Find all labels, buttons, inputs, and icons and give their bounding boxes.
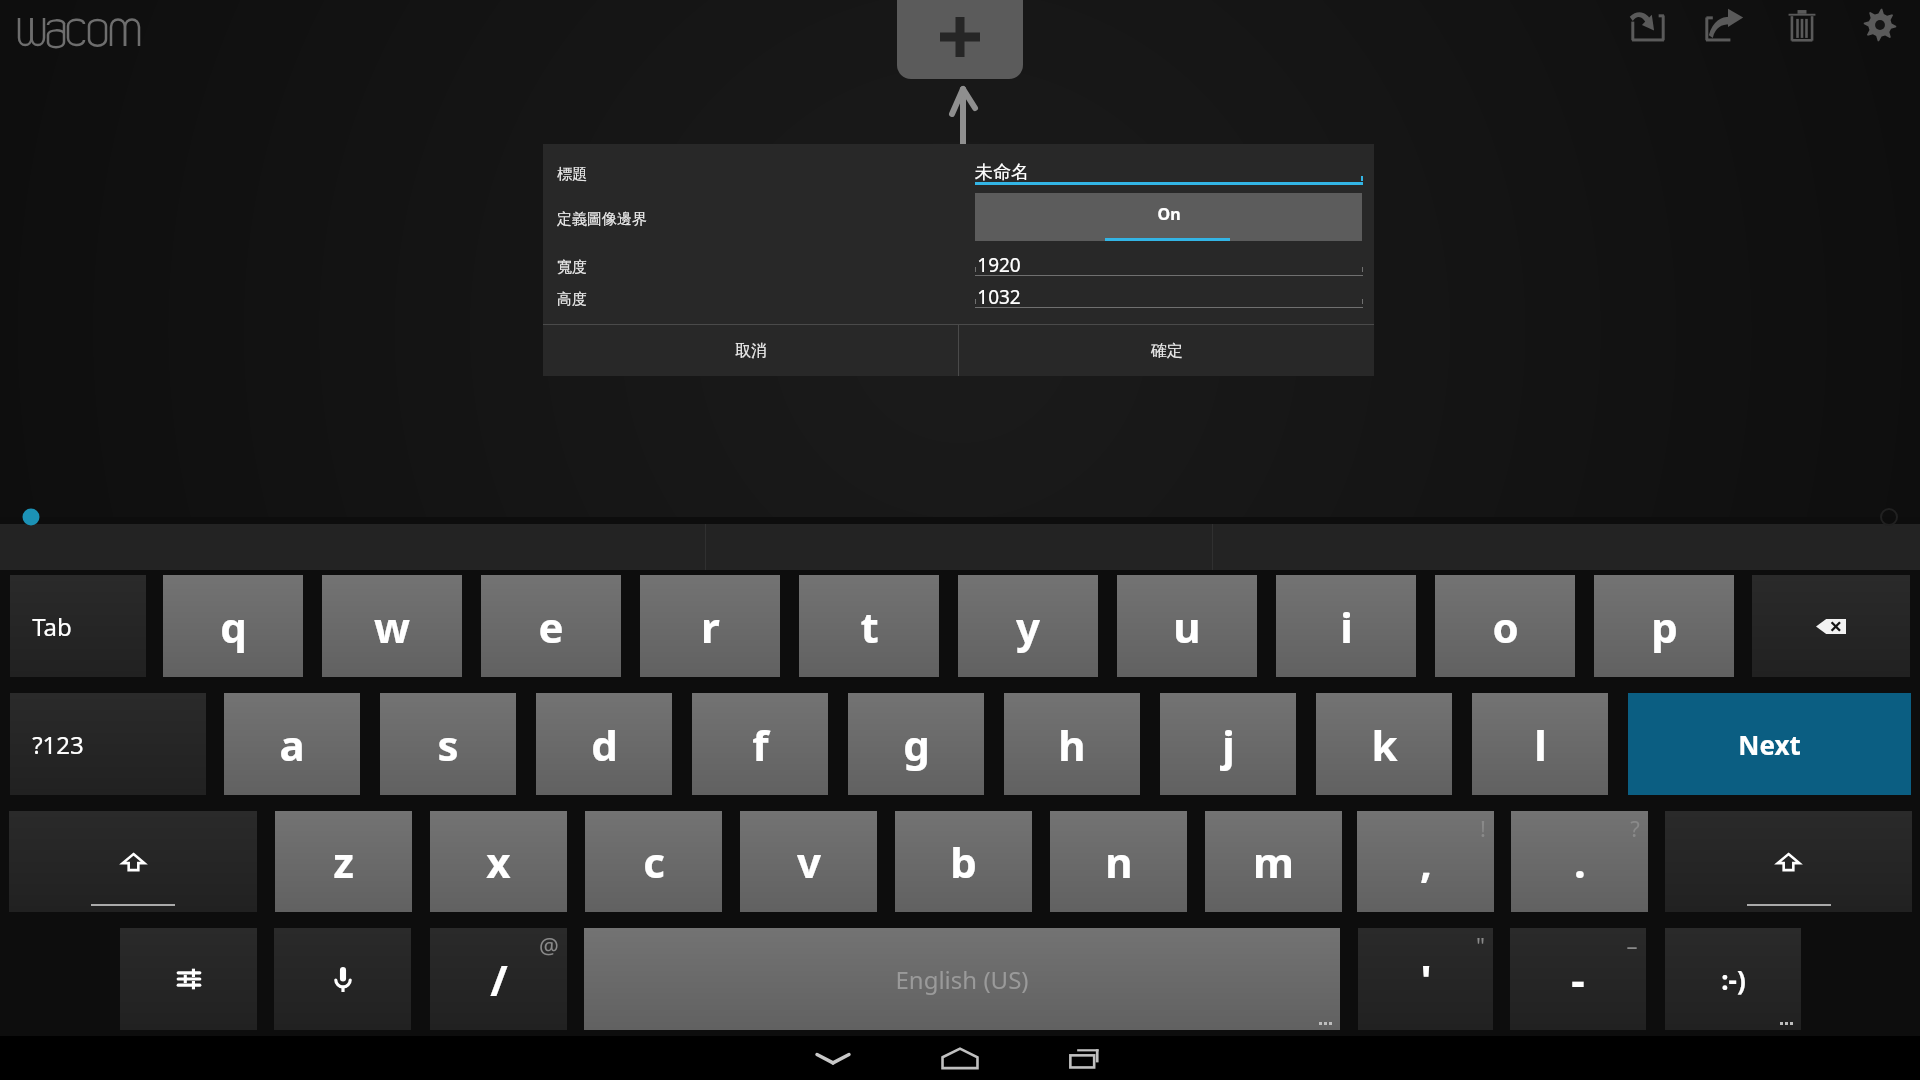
button[interactable]: f: [692, 693, 828, 795]
button[interactable]: /: [430, 928, 567, 1030]
button[interactable]: ': [1358, 928, 1493, 1030]
staticText: j: [1222, 716, 1235, 773]
button[interactable]: bksp: [1752, 575, 1910, 677]
button[interactable]: Hide keyboard: [793, 1036, 873, 1080]
button[interactable]: h: [1004, 693, 1140, 795]
button[interactable]: :-): [1665, 928, 1801, 1030]
button[interactable]: z: [275, 811, 412, 912]
button[interactable]: x: [430, 811, 567, 912]
button[interactable]: ?123: [10, 693, 206, 795]
button[interactable]: o: [1435, 575, 1575, 677]
button[interactable]: Title field: [975, 158, 1363, 185]
button[interactable]: s: [380, 693, 516, 795]
staticText: ?123: [32, 728, 84, 761]
button[interactable]: u: [1117, 575, 1257, 677]
staticText: :-): [1721, 962, 1746, 997]
staticText: ,: [1420, 833, 1432, 890]
staticText: h: [1058, 716, 1086, 773]
staticText: y: [1016, 598, 1040, 655]
button[interactable]: Settings: [1841, 0, 1919, 50]
button[interactable]: p: [1594, 575, 1734, 677]
button[interactable]: d: [536, 693, 672, 795]
staticText: 標題: [557, 165, 587, 184]
button[interactable]: Width field: [975, 252, 1363, 276]
button[interactable]: Import: [1609, 0, 1687, 50]
button[interactable]: c: [585, 811, 722, 912]
staticText: b: [950, 833, 977, 890]
button[interactable]: cfg: [120, 928, 257, 1030]
button[interactable]: k: [1316, 693, 1452, 795]
button[interactable]: w: [322, 575, 462, 677]
button[interactable]: ,: [1357, 811, 1494, 912]
staticText: v: [797, 833, 821, 890]
button[interactable]: r: [640, 575, 780, 677]
button[interactable]: j: [1160, 693, 1296, 795]
button[interactable]: e: [481, 575, 621, 677]
button[interactable]: Tab: [10, 575, 146, 677]
staticText: 1032: [977, 284, 1021, 308]
staticText: .: [1574, 833, 1586, 890]
staticText: n: [1105, 833, 1133, 890]
button[interactable]: g: [848, 693, 984, 795]
staticText: t: [860, 598, 879, 655]
staticText: 1920: [977, 252, 1021, 276]
staticText: o: [1492, 598, 1519, 655]
staticText: r: [701, 598, 720, 655]
staticText: 寬度: [557, 258, 587, 277]
staticText: 取消: [735, 341, 767, 361]
staticText: a: [279, 716, 305, 773]
button[interactable]: y: [958, 575, 1098, 677]
button[interactable]: m: [1205, 811, 1342, 912]
button[interactable]: English (US): [584, 928, 1340, 1030]
staticText: 高度: [557, 290, 587, 309]
button[interactable]: t: [799, 575, 939, 677]
button[interactable]: b: [895, 811, 1032, 912]
button[interactable]: mic: [274, 928, 411, 1030]
button[interactable]: Add new sketch: [897, 0, 1023, 79]
staticText: ?: [1630, 813, 1640, 843]
button[interactable]: Next: [1628, 693, 1911, 795]
staticText: !: [1480, 813, 1486, 843]
button[interactable]: 取消: [543, 325, 958, 376]
button[interactable]: n: [1050, 811, 1187, 912]
button[interactable]: q: [163, 575, 303, 677]
button[interactable]: 確定: [959, 325, 1374, 376]
staticText: e: [538, 598, 564, 655]
button[interactable]: Delete: [1763, 0, 1841, 50]
button[interactable]: a: [224, 693, 360, 795]
button[interactable]: v: [740, 811, 877, 912]
button[interactable]: On: [975, 193, 1362, 241]
staticText: l: [1534, 716, 1547, 773]
staticText: Tab: [32, 610, 72, 643]
button[interactable]: shift: [9, 811, 257, 912]
staticText: –: [1626, 930, 1638, 960]
button[interactable]: shift: [1665, 811, 1912, 912]
staticText: s: [437, 716, 459, 773]
staticText: i: [1340, 598, 1353, 655]
staticText: -: [1571, 951, 1585, 1008]
staticText: /: [490, 951, 508, 1008]
staticText: Next: [1738, 727, 1801, 762]
staticText: @: [539, 930, 559, 960]
button[interactable]: .: [1511, 811, 1648, 912]
button[interactable]: Recent apps: [1046, 1039, 1126, 1077]
staticText: x: [486, 833, 511, 890]
staticText: g: [903, 716, 930, 773]
button[interactable]: Share: [1685, 0, 1763, 50]
staticText: q: [220, 598, 247, 655]
staticText: f: [752, 716, 769, 773]
button[interactable]: Home: [920, 1039, 1000, 1077]
staticText: ": [1476, 930, 1485, 960]
staticText: m: [1253, 833, 1294, 890]
button[interactable]: i: [1276, 575, 1416, 677]
staticText: d: [591, 716, 618, 773]
button[interactable]: Height field: [975, 284, 1363, 308]
staticText: On: [1157, 203, 1181, 225]
staticText: z: [333, 833, 354, 890]
staticText: u: [1173, 598, 1201, 655]
staticText: k: [1371, 716, 1398, 773]
button[interactable]: -: [1510, 928, 1646, 1030]
button[interactable]: l: [1472, 693, 1608, 795]
staticText: 未命名: [975, 161, 1029, 184]
staticText: p: [1651, 598, 1678, 655]
